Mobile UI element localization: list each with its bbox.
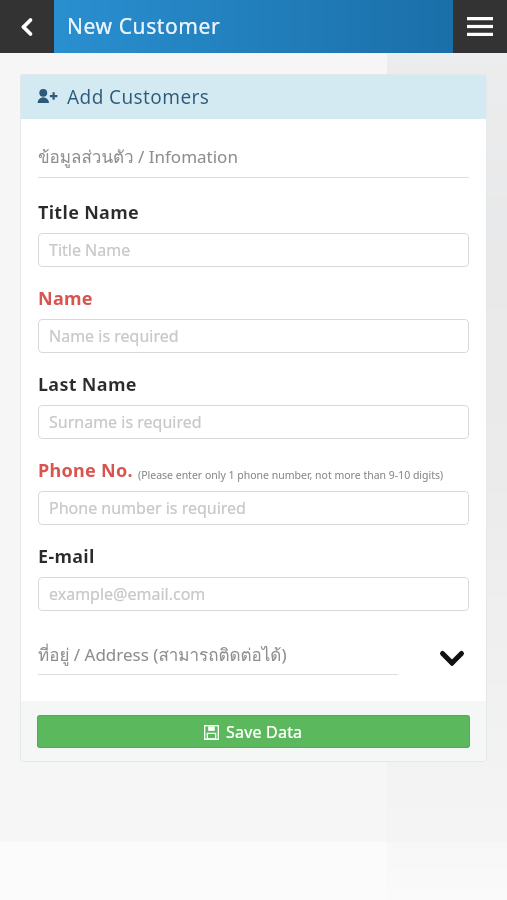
button[interactable]: Surname is required [38,405,469,439]
staticText: ที่อยู่ / Address (สามารถติดต่อได้) [38,641,287,668]
staticText: Title Name [38,200,140,225]
staticText: Name [38,286,93,311]
staticText: (Please enter only 1 phone number, not m… [138,468,444,482]
button[interactable]: Phone number is required [38,491,469,525]
staticText: Title Name [49,239,131,261]
staticText: Phone No. [38,458,133,483]
button[interactable]: ที่อยู่ / Address (สามารถติดต่อได้) [38,641,469,675]
staticText: Phone number is required [49,497,246,519]
staticText: New Customer [67,12,221,41]
other: Expand address [435,641,469,675]
staticText: Add Customers [67,84,210,110]
button[interactable]: Add Customers [20,74,487,119]
staticText: Last Name [38,372,137,397]
button[interactable]: Menu [453,0,507,53]
button[interactable]: Name is required [38,319,469,353]
staticText: example@email.com [49,583,206,605]
button[interactable]: Save Data [37,715,470,748]
staticText: Name is required [49,325,179,347]
button[interactable]: example@email.com [38,577,469,611]
staticText: Surname is required [49,411,202,433]
button[interactable]: Back [0,0,54,53]
button[interactable]: Title Name [38,233,469,267]
staticText: ข้อมูลส่วนตัว / Infomation [38,143,238,170]
staticText: Save Data [226,721,303,743]
staticText: E-mail [38,544,95,569]
